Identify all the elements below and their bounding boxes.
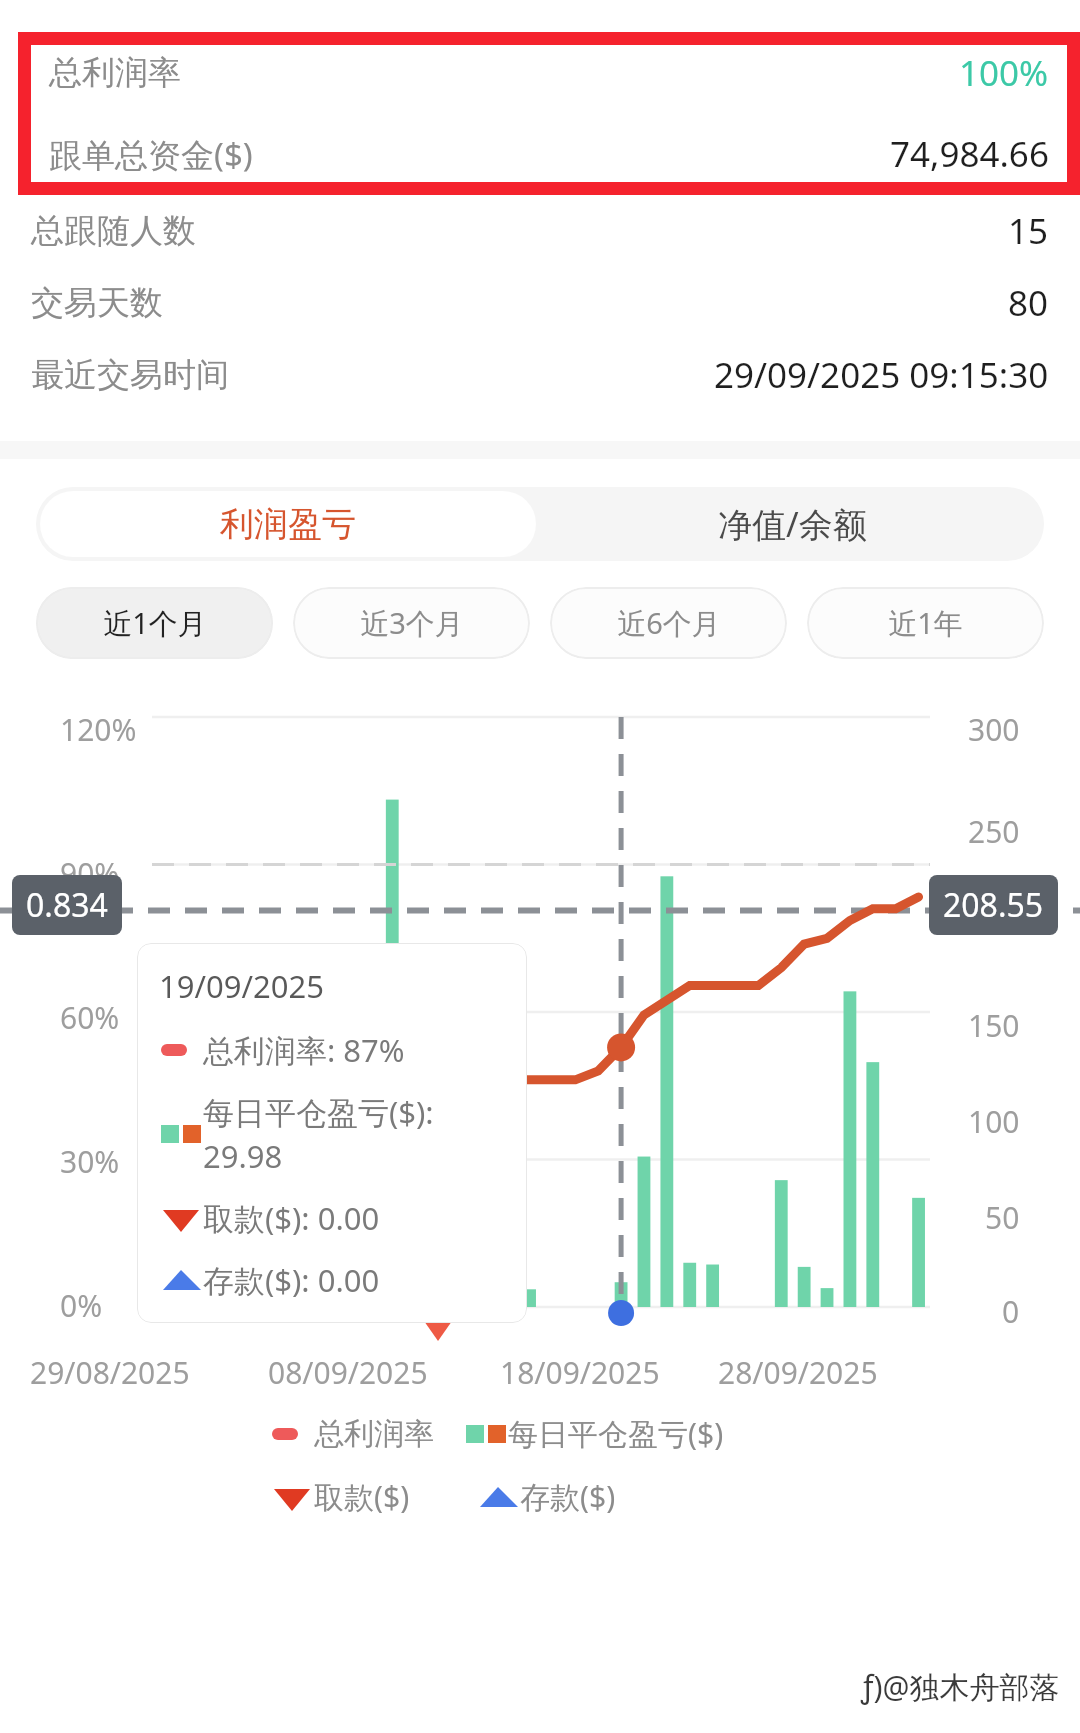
staticText: 50 <box>985 1197 1020 1238</box>
button[interactable]: 总跟随人数 <box>31 195 1049 267</box>
staticText: 300 <box>968 709 1020 750</box>
staticText: 总利润率: 87% <box>203 1029 405 1071</box>
staticText: 30% <box>60 1141 120 1182</box>
staticText: 28/09/2025 <box>718 1352 878 1393</box>
staticText: 60% <box>60 997 120 1038</box>
staticText: 存款($): 0.00 <box>203 1259 380 1301</box>
button[interactable]: 跟单总资金($) <box>49 113 1049 195</box>
staticText: 最近交易时间 <box>31 354 229 396</box>
button[interactable]: 净值/余额 <box>544 491 1040 557</box>
button[interactable]: 最近交易时间 <box>31 339 1049 411</box>
staticText: 近3个月 <box>360 603 464 643</box>
staticText: 18/09/2025 <box>500 1352 660 1393</box>
staticText: 0 <box>1002 1291 1020 1332</box>
staticText: 80 <box>1008 279 1049 327</box>
staticText: 120% <box>60 709 137 750</box>
staticText: 29/08/2025 <box>30 1352 190 1393</box>
staticText: 交易天数 <box>31 282 163 324</box>
button[interactable]: 利润盈亏 <box>40 491 536 557</box>
button[interactable]: 交易天数 <box>31 267 1049 339</box>
staticText: 取款($): 0.00 <box>203 1197 380 1239</box>
staticText: 90% <box>60 853 120 894</box>
button[interactable]: 近1个月 <box>36 587 273 659</box>
staticText: 250 <box>968 811 1020 852</box>
staticText: 19/09/2025 <box>159 965 324 1007</box>
staticText: 29/09/2025 09:15:30 <box>714 351 1049 399</box>
button[interactable]: 近1年 <box>807 587 1044 659</box>
staticText: 存款($) <box>520 1476 616 1517</box>
staticText: 74,984.66 <box>890 130 1049 178</box>
staticText: 净值/余额 <box>718 501 867 547</box>
staticText: ƒ)@独木舟部落 <box>861 1666 1060 1707</box>
staticText: 每日平仓盈亏($): 29.98 <box>203 1091 511 1177</box>
staticText: 100% <box>959 49 1049 97</box>
staticText: 近6个月 <box>617 603 721 643</box>
staticText: 跟单总资金($) <box>49 132 253 177</box>
staticText: 取款($) <box>314 1476 410 1517</box>
staticText: 0.834 <box>26 883 108 927</box>
staticText: 利润盈亏 <box>220 503 356 546</box>
staticText: 总利润率 <box>314 1415 434 1453</box>
staticText: 总跟随人数 <box>31 210 196 252</box>
staticText: 100 <box>968 1101 1020 1142</box>
staticText: 近1个月 <box>103 603 207 643</box>
staticText: 每日平仓盈亏($) <box>508 1413 724 1454</box>
button[interactable]: 近3个月 <box>293 587 530 659</box>
staticText: 15 <box>1008 207 1049 255</box>
staticText: 150 <box>968 1005 1020 1046</box>
staticText: 0% <box>60 1285 103 1326</box>
staticText: 总利润率 <box>49 52 181 94</box>
button[interactable]: 近6个月 <box>550 587 787 659</box>
button[interactable]: 总利润率 <box>49 32 1049 113</box>
staticText: 208.55 <box>943 883 1044 927</box>
staticText: 08/09/2025 <box>268 1352 428 1393</box>
staticText: 近1年 <box>888 603 963 643</box>
